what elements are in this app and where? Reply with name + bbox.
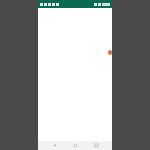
button[interactable]: Recent apps: [91, 141, 101, 150]
button[interactable]: Back: [49, 141, 59, 150]
button[interactable]: Home: [70, 141, 80, 150]
